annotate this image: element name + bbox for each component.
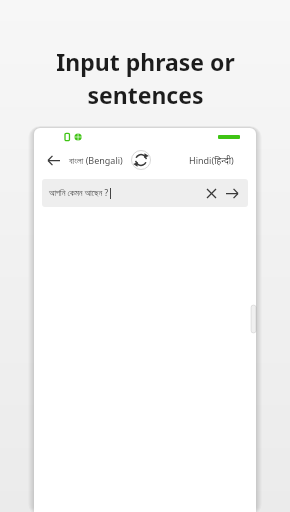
staticText: sentences (87, 79, 204, 110)
staticText: Input phrase or (56, 46, 235, 77)
button[interactable]: Clear text (203, 185, 219, 201)
button[interactable]: Back (42, 149, 64, 171)
button[interactable]: Swap languages (131, 150, 151, 170)
button[interactable]: বাংলা (Bengali) (67, 152, 125, 168)
staticText: বাংলা (Bengali) (69, 154, 123, 166)
button[interactable]: আপনি কেমন আছেন ? (42, 179, 248, 207)
staticText: Hindi(हिन्दी) (189, 154, 234, 166)
button[interactable]: Translate (223, 184, 241, 202)
button[interactable]: Hindi(हिन्दी) (187, 152, 236, 168)
staticText: আপনি কেমন আছেন ? (49, 187, 109, 199)
